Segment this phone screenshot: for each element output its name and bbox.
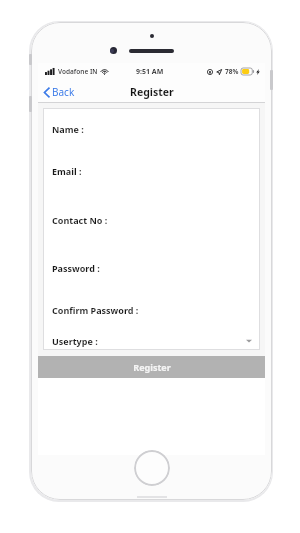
staticText: Password : <box>52 262 100 274</box>
button[interactable]: Contact No : <box>43 192 260 247</box>
button[interactable]: Register <box>38 356 265 378</box>
staticText: 9:51 AM <box>136 67 164 77</box>
button[interactable]: Email : <box>43 150 260 192</box>
staticText: Contact No : <box>52 214 108 226</box>
button[interactable]: Back <box>38 82 83 102</box>
staticText: Vodafone IN <box>58 67 98 76</box>
staticText: Name : <box>52 123 84 135</box>
button[interactable]: Password : <box>43 247 260 289</box>
staticText: Register <box>130 85 174 99</box>
staticText: Email : <box>52 165 82 177</box>
staticText: Register <box>133 361 171 373</box>
button[interactable]: Name : <box>43 108 260 150</box>
button[interactable]: Usertype dropdown <box>43 331 260 350</box>
button[interactable]: Confirm Password : <box>43 289 260 331</box>
staticText: Back <box>52 85 75 99</box>
staticText: 78% <box>225 67 239 76</box>
staticText: Usertype : <box>52 335 98 347</box>
staticText: Confirm Password : <box>52 304 139 316</box>
